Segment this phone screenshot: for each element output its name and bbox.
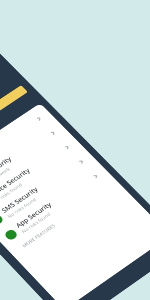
button[interactable]: App Security: [0, 162, 113, 249]
staticText: Secure network: [0, 166, 12, 190]
staticText: Wi-Fi Security: [0, 155, 15, 186]
staticText: App Security: [14, 200, 54, 230]
button[interactable]: Wi-Fi Security: [0, 119, 70, 205]
staticText: SMS Security: [0, 185, 40, 215]
button[interactable]: SMS Security: [0, 148, 99, 234]
staticText: No risks found: [20, 211, 53, 235]
staticText: MORE FEATURES: [21, 222, 57, 249]
staticText: No risks found: [6, 196, 38, 220]
button[interactable]: Device Security: [0, 133, 84, 219]
button[interactable]: Web Security: [0, 105, 56, 190]
staticText: Device Security: [0, 166, 32, 200]
staticText: No risks found: [0, 181, 24, 205]
